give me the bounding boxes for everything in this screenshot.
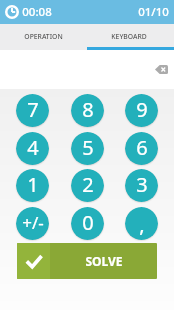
button[interactable]: 4 [16,132,49,165]
button[interactable]: 9 [125,94,158,127]
staticText: 5 [82,134,94,161]
button[interactable]: 6 [125,132,158,165]
staticText: 7 [27,96,39,123]
button[interactable]: 1 [16,169,49,202]
button[interactable]: +/- [16,207,49,240]
button[interactable]: , [125,207,158,240]
button[interactable]: KEYBOARD [87,24,174,50]
staticText: 01/10 [138,4,169,20]
staticText: 1 [27,171,39,198]
staticText: 8 [82,96,94,123]
staticText: SOLVE [85,253,123,269]
staticText: 3 [136,171,148,198]
staticText: 0 [82,209,94,236]
staticText: +/- [22,211,44,234]
button[interactable]: SOLVE [17,243,157,279]
staticText: 4 [27,134,39,161]
button[interactable]: OPERATION [0,24,87,50]
staticText: 9 [136,96,148,123]
staticText: 6 [136,134,148,161]
button[interactable]: 2 [71,169,104,202]
button[interactable]: 8 [71,94,104,127]
button[interactable]: 7 [16,94,49,127]
staticText: KEYBOARD [111,32,147,41]
staticText: OPERATION [24,32,63,41]
staticText: 2 [82,171,94,198]
button[interactable]: Backspace [149,59,173,79]
button[interactable]: 0 [71,207,104,240]
staticText: , [139,211,145,238]
staticText: 00:08 [22,4,52,20]
button[interactable]: 5 [71,132,104,165]
button[interactable]: 3 [125,169,158,202]
